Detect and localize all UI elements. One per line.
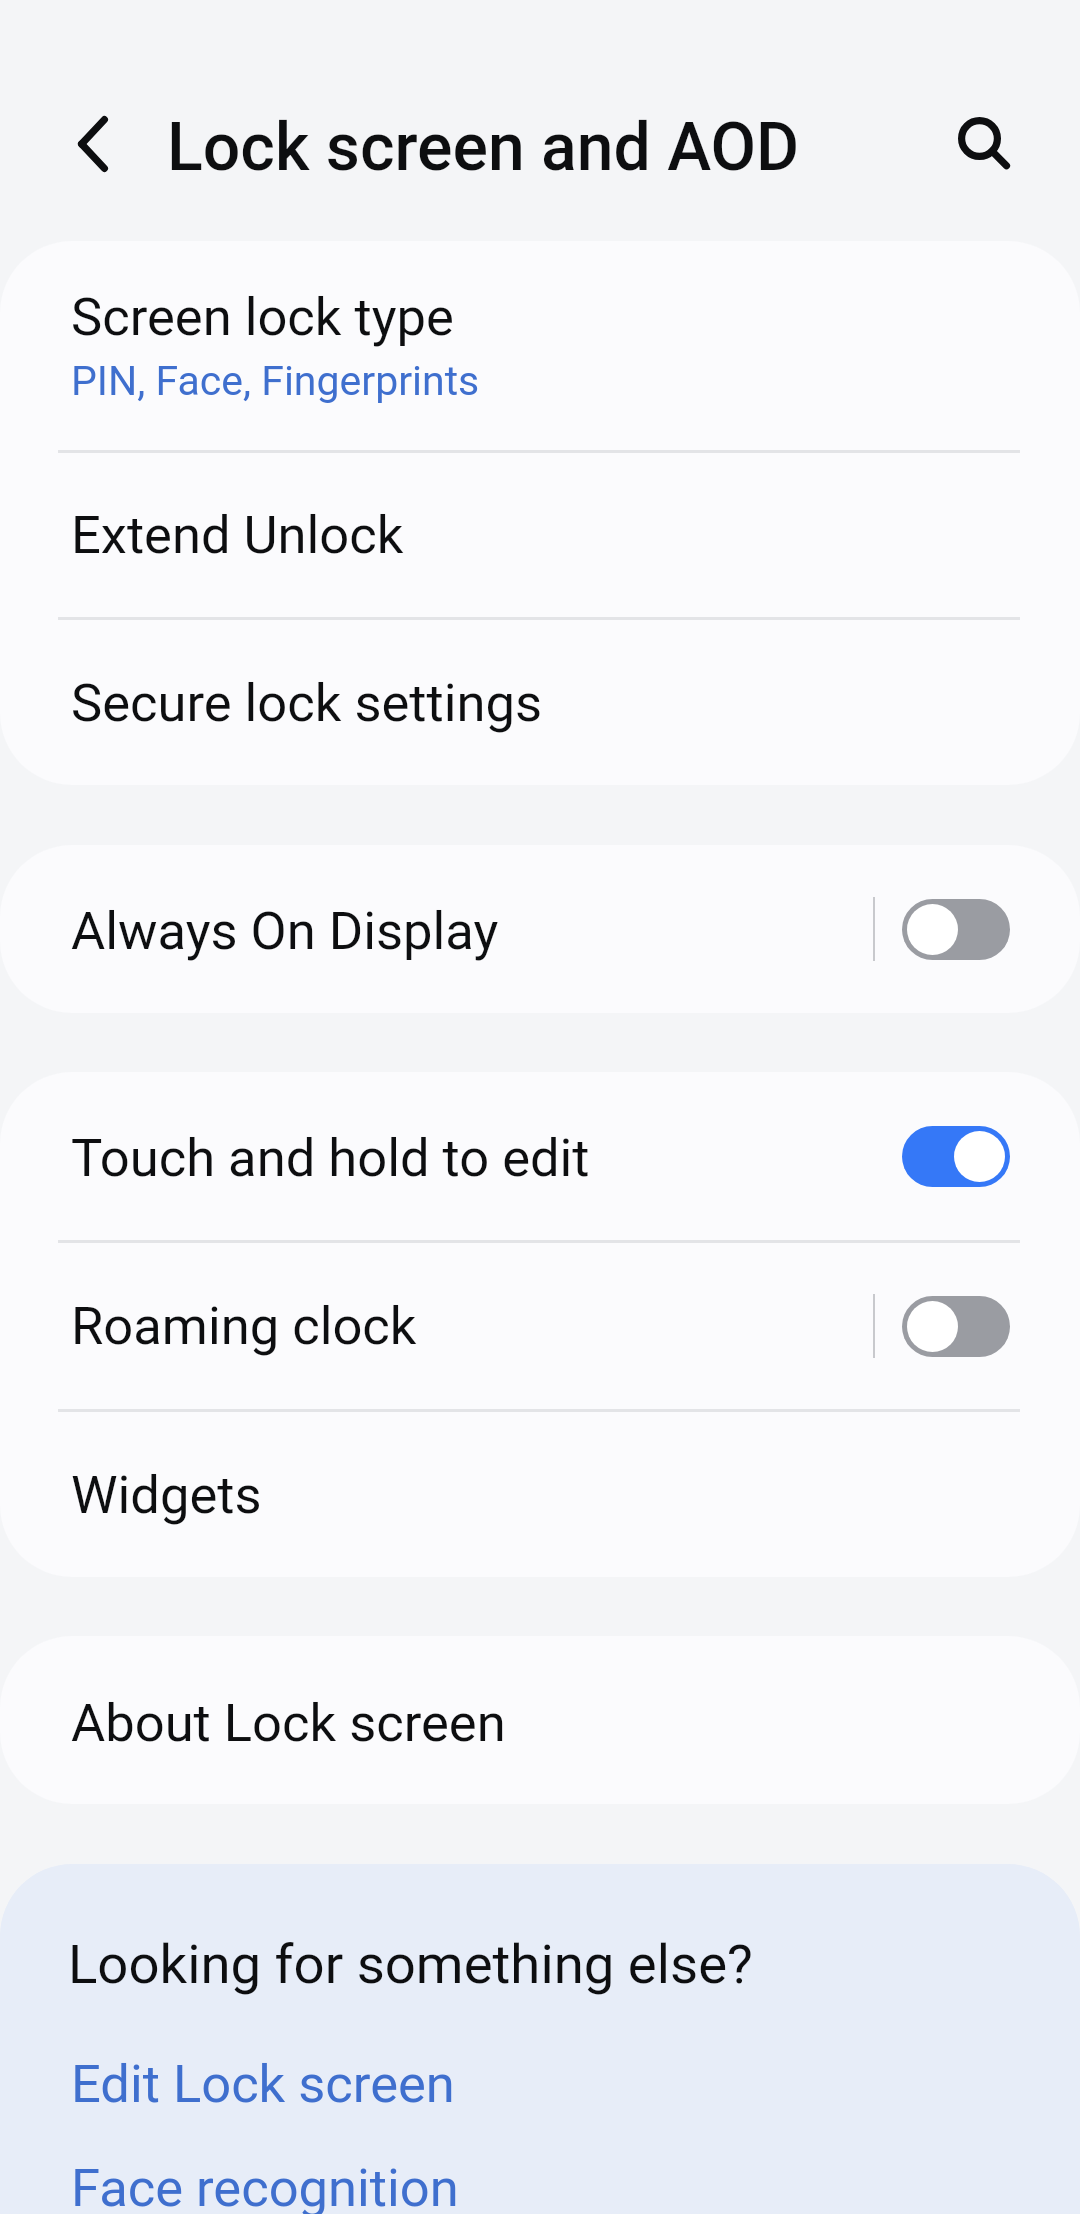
staticText: Face recognition <box>71 2157 459 2214</box>
staticText: Extend Unlock <box>71 504 404 566</box>
button[interactable]: Edit Lock screen <box>0 2034 1080 2138</box>
staticText: Always On Display <box>71 900 499 962</box>
button[interactable]: Touch and hold to edit <box>0 1072 1080 1240</box>
staticText: Secure lock settings <box>71 672 543 734</box>
staticText: Roaming clock <box>71 1295 417 1357</box>
staticText: Widgets <box>71 1464 262 1526</box>
staticText: PIN, Face, Fingerprints <box>71 357 480 405</box>
staticText: About Lock screen <box>71 1692 506 1754</box>
staticText: Touch and hold to edit <box>71 1127 902 1189</box>
button[interactable]: Always On Display <box>0 845 873 1013</box>
staticText: Edit Lock screen <box>71 2053 455 2115</box>
button[interactable]: Roaming clock <box>902 1296 1010 1357</box>
button[interactable]: Face recognition <box>0 2138 1080 2214</box>
button[interactable]: Widgets <box>0 1412 1080 1577</box>
button[interactable]: Screen lock type <box>0 241 1080 450</box>
staticText: Looking for something else? <box>68 1932 753 1996</box>
button[interactable]: Roaming clock <box>0 1243 873 1409</box>
staticText: Screen lock type <box>71 286 454 348</box>
button[interactable]: Extend Unlock <box>0 453 1080 617</box>
button[interactable]: Touch and hold to edit <box>902 1126 1010 1187</box>
button[interactable]: Secure lock settings <box>0 620 1080 785</box>
button[interactable]: Navigate up <box>36 87 156 207</box>
button[interactable]: Search <box>929 87 1049 207</box>
staticText: Lock screen and AOD <box>167 109 800 186</box>
button[interactable]: Always On Display <box>902 899 1010 960</box>
button[interactable]: About Lock screen <box>0 1636 1080 1804</box>
